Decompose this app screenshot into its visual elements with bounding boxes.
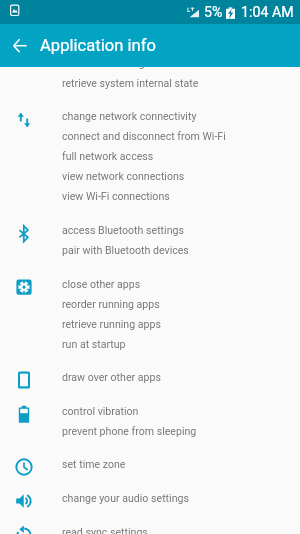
staticText: change network connectivity [62,110,197,122]
staticText: retrieve system internal state [62,77,199,89]
staticText: close other apps [62,278,141,290]
staticText: set time zone [62,458,126,470]
staticText: retrieve running apps [62,318,161,330]
button[interactable]: change your audio settings [0,488,300,508]
button[interactable]: change network connectivity [0,106,300,206]
button[interactable]: set time zone [0,454,300,474]
staticText: 5% [204,4,223,21]
staticText: 1:04 AM [241,4,294,21]
staticText: read sensitive log data [62,57,168,69]
staticText: draw over other apps [62,371,161,383]
staticText: reorder running apps [62,298,160,310]
staticText: access Bluetooth settings [62,224,184,236]
button[interactable]: read sensitive log data [0,53,300,93]
staticText: run at startup [62,338,126,350]
button[interactable]: read sync settings [0,522,300,534]
staticText: full network access [62,150,154,162]
staticText: Application info [40,36,156,55]
button[interactable]: draw over other apps [0,367,300,387]
staticText: view network connections [62,170,185,182]
button[interactable]: control vibration [0,401,300,441]
staticText: view Wi-Fi connections [62,190,170,202]
button[interactable]: Navigate up [0,24,40,67]
button[interactable]: access Bluetooth settings [0,220,300,260]
staticText: read sync settings [62,526,148,534]
staticText: change your audio settings [62,492,189,504]
button[interactable]: close other apps [0,274,300,354]
staticText: pair with Bluetooth devices [62,244,189,256]
staticText: control vibration [62,405,139,417]
staticText: connect and disconnect from Wi-Fi [62,130,226,142]
staticText: prevent phone from sleeping [62,425,197,437]
